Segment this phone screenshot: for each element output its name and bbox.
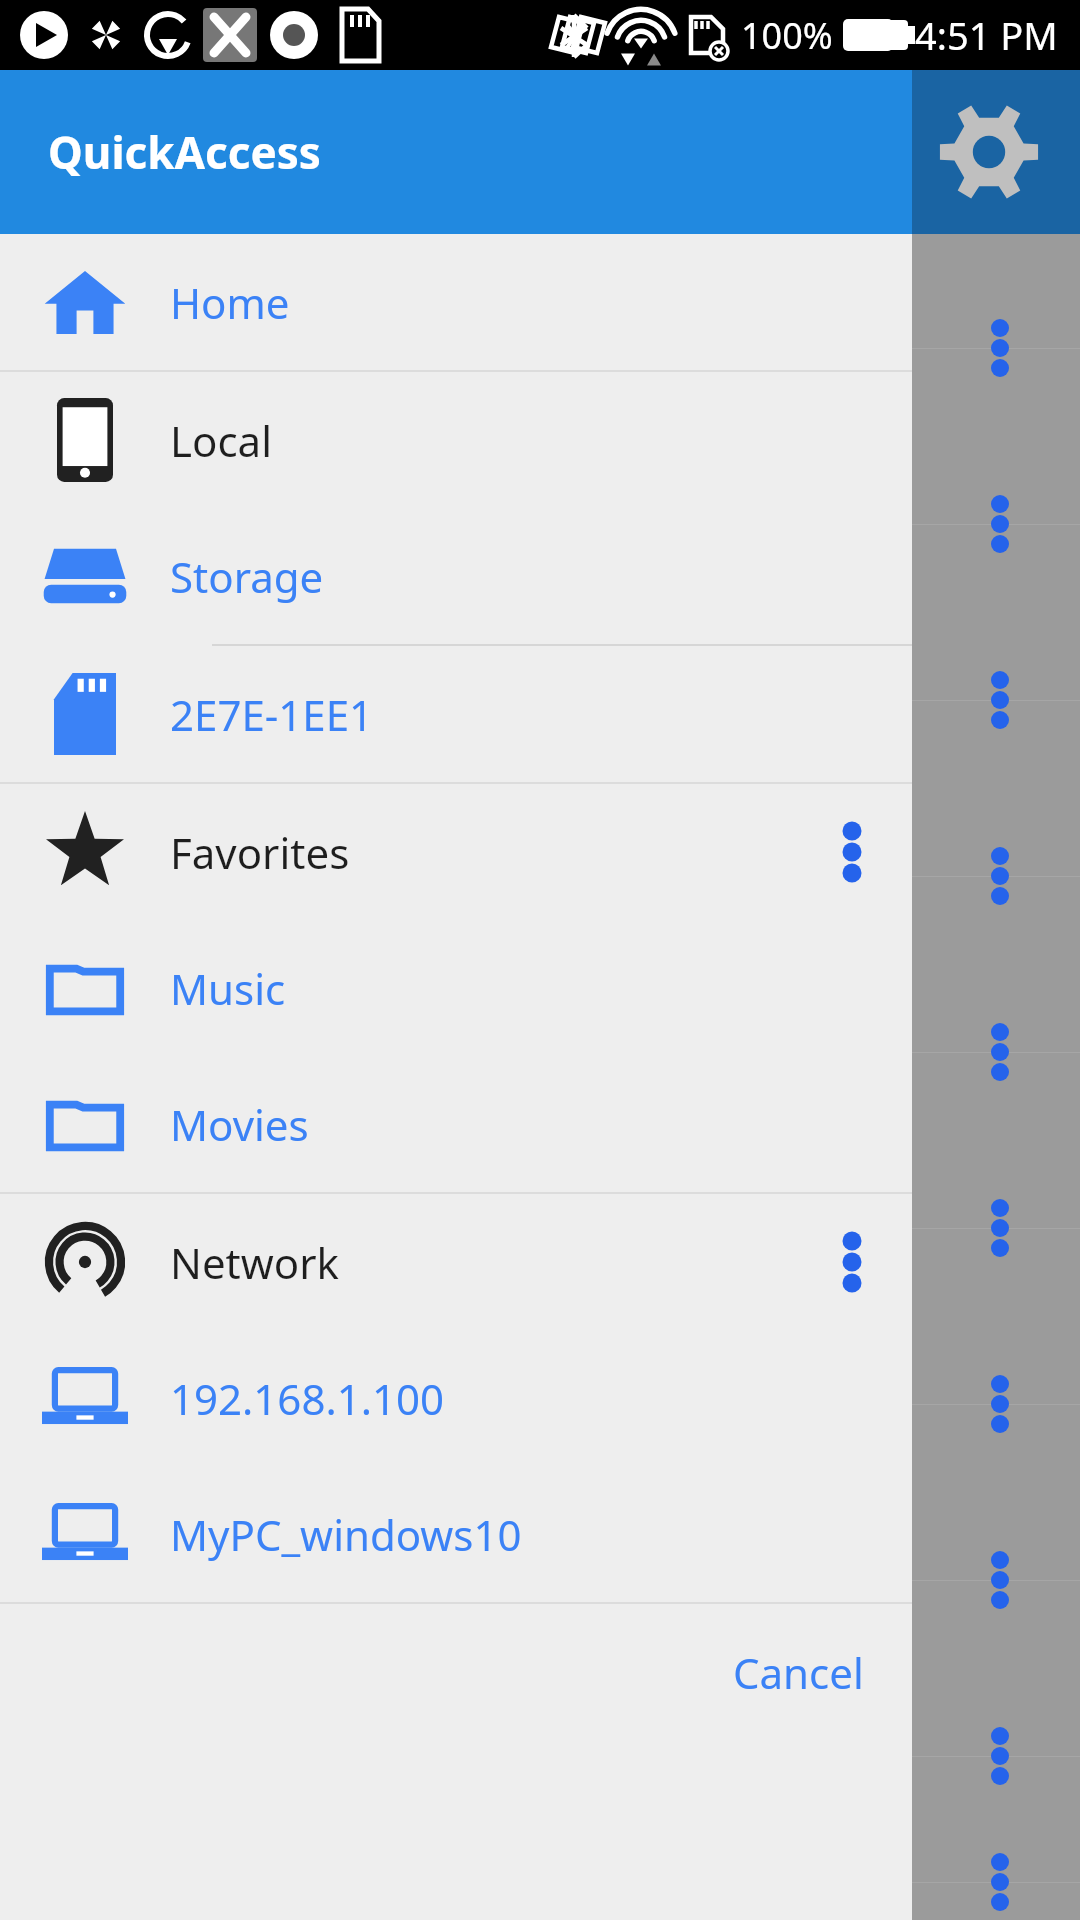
button[interactable]: Local [0, 372, 912, 508]
button[interactable]: 2E7E-1EE1 [0, 646, 912, 782]
staticText: 4:51 PM [915, 9, 1058, 61]
staticText: Favorites [170, 824, 806, 881]
staticText: QuickAccess [48, 122, 321, 182]
staticText: Local [170, 412, 806, 469]
button[interactable]: Favorites [0, 784, 912, 920]
button[interactable]: More options [968, 316, 1032, 380]
button[interactable]: Settings [934, 97, 1044, 207]
staticText: Music [170, 960, 806, 1017]
button[interactable]: More options [968, 492, 1032, 556]
staticText: Storage [170, 548, 806, 605]
button[interactable]: 192.168.1.100 [0, 1330, 912, 1466]
button[interactable]: More options [0, 788, 1080, 964]
button[interactable]: More options [968, 1196, 1032, 1260]
button[interactable]: Home [0, 234, 912, 370]
button[interactable]: More options [968, 1372, 1032, 1436]
staticText: Cancel [733, 1644, 864, 1701]
button[interactable]: More options [968, 1020, 1032, 1084]
button[interactable]: More options for Network [806, 1216, 898, 1308]
staticText: Network [170, 1234, 806, 1291]
button[interactable]: Cancel [703, 1624, 894, 1721]
button[interactable]: MyPC_windows10 [0, 1466, 912, 1602]
button[interactable]: More options [968, 844, 1032, 908]
staticText: Home [170, 274, 806, 331]
button[interactable]: More options [0, 260, 1080, 436]
button[interactable]: Movies [0, 1056, 912, 1192]
staticText: Movies [170, 1096, 806, 1153]
button[interactable]: More options [0, 436, 1080, 612]
button[interactable]: More options [0, 1140, 1080, 1316]
button[interactable]: More options [0, 1492, 1080, 1668]
button[interactable]: More options [0, 1844, 1080, 1920]
button[interactable]: More options [0, 612, 1080, 788]
button[interactable]: More options [968, 1724, 1032, 1788]
button[interactable]: Network [0, 1194, 912, 1330]
button[interactable]: Music [0, 920, 912, 1056]
button[interactable]: More options [0, 964, 1080, 1140]
staticText: 2E7E-1EE1 [170, 686, 806, 743]
button[interactable]: QuickAccess [0, 70, 912, 234]
staticText: 192.168.1.100 [170, 1370, 806, 1427]
button[interactable]: More options [0, 1668, 1080, 1844]
button[interactable]: Storage [0, 508, 912, 644]
button[interactable]: More options [968, 1548, 1032, 1612]
button[interactable]: More options [0, 1316, 1080, 1492]
staticText: 100% [741, 11, 833, 60]
staticText: MyPC_windows10 [170, 1506, 806, 1563]
button[interactable]: More options for Favorites [806, 806, 898, 898]
button[interactable]: More options [968, 668, 1032, 732]
button[interactable]: More options [968, 1850, 1032, 1914]
